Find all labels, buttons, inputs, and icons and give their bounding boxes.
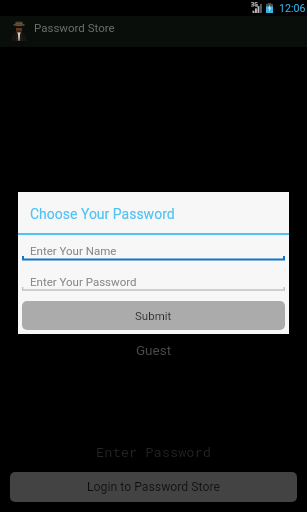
button[interactable]: Submit xyxy=(22,301,285,330)
staticText: Guest xyxy=(0,342,307,358)
staticText: Password Store xyxy=(34,21,115,34)
staticText: Submit xyxy=(135,309,172,322)
staticText: Enter Password xyxy=(0,443,307,461)
staticText: Choose Your Password xyxy=(30,206,175,222)
staticText: Enter Your Password xyxy=(30,275,137,288)
staticText: 12:06 xyxy=(279,2,306,14)
staticText: Login to Password Store xyxy=(87,480,220,494)
button[interactable]: Login to Password Store xyxy=(10,472,297,502)
staticText: Enter Your Name xyxy=(30,244,117,257)
